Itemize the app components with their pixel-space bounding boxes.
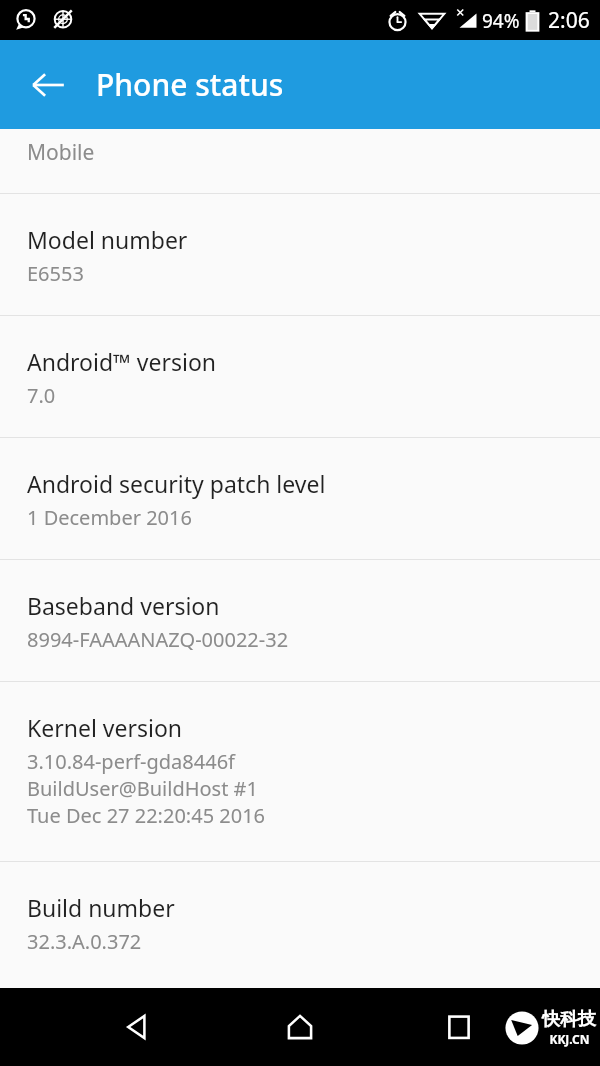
staticText: 32.3.A.0.372 <box>27 928 142 955</box>
staticText: Phone status <box>96 64 284 105</box>
staticText: Model number <box>27 224 188 255</box>
button[interactable]: Recent apps <box>428 996 490 1058</box>
button[interactable]: Kernel version <box>0 682 600 861</box>
button[interactable]: Navigate up <box>0 40 96 129</box>
button[interactable]: Home <box>269 996 331 1058</box>
button[interactable]: Android™ version <box>0 316 600 437</box>
staticText: 1 December 2016 <box>27 504 192 531</box>
staticText: Baseband version <box>27 590 220 621</box>
staticText: Mobile <box>27 138 95 167</box>
staticText: Android™ version <box>27 346 217 377</box>
staticText: BuildUser@BuildHost #1 <box>27 775 258 802</box>
staticText: Kernel version <box>27 712 183 743</box>
staticText: 3.10.84-perf-gda8446f <box>27 748 235 775</box>
staticText: KKJ.CN <box>549 1031 590 1047</box>
staticText: Tue Dec 27 22:20:45 2016 <box>27 802 266 829</box>
staticText: 94% <box>482 8 520 34</box>
button[interactable]: Baseband version <box>0 560 600 681</box>
staticText: Build number <box>27 892 175 923</box>
button[interactable]: Model number <box>0 194 600 315</box>
button[interactable]: Mobile <box>0 129 600 193</box>
button[interactable]: Build number <box>0 862 600 983</box>
staticText: 快科技 <box>542 1008 596 1031</box>
staticText: Android security patch level <box>27 468 326 499</box>
staticText: 8994-FAAAANAZQ-00022-32 <box>27 626 289 653</box>
staticText: 2:06 <box>548 6 590 35</box>
staticText: E6553 <box>27 260 84 287</box>
button[interactable]: Android security patch level <box>0 438 600 559</box>
staticText: 7.0 <box>27 382 56 409</box>
button[interactable]: Back <box>105 996 167 1058</box>
